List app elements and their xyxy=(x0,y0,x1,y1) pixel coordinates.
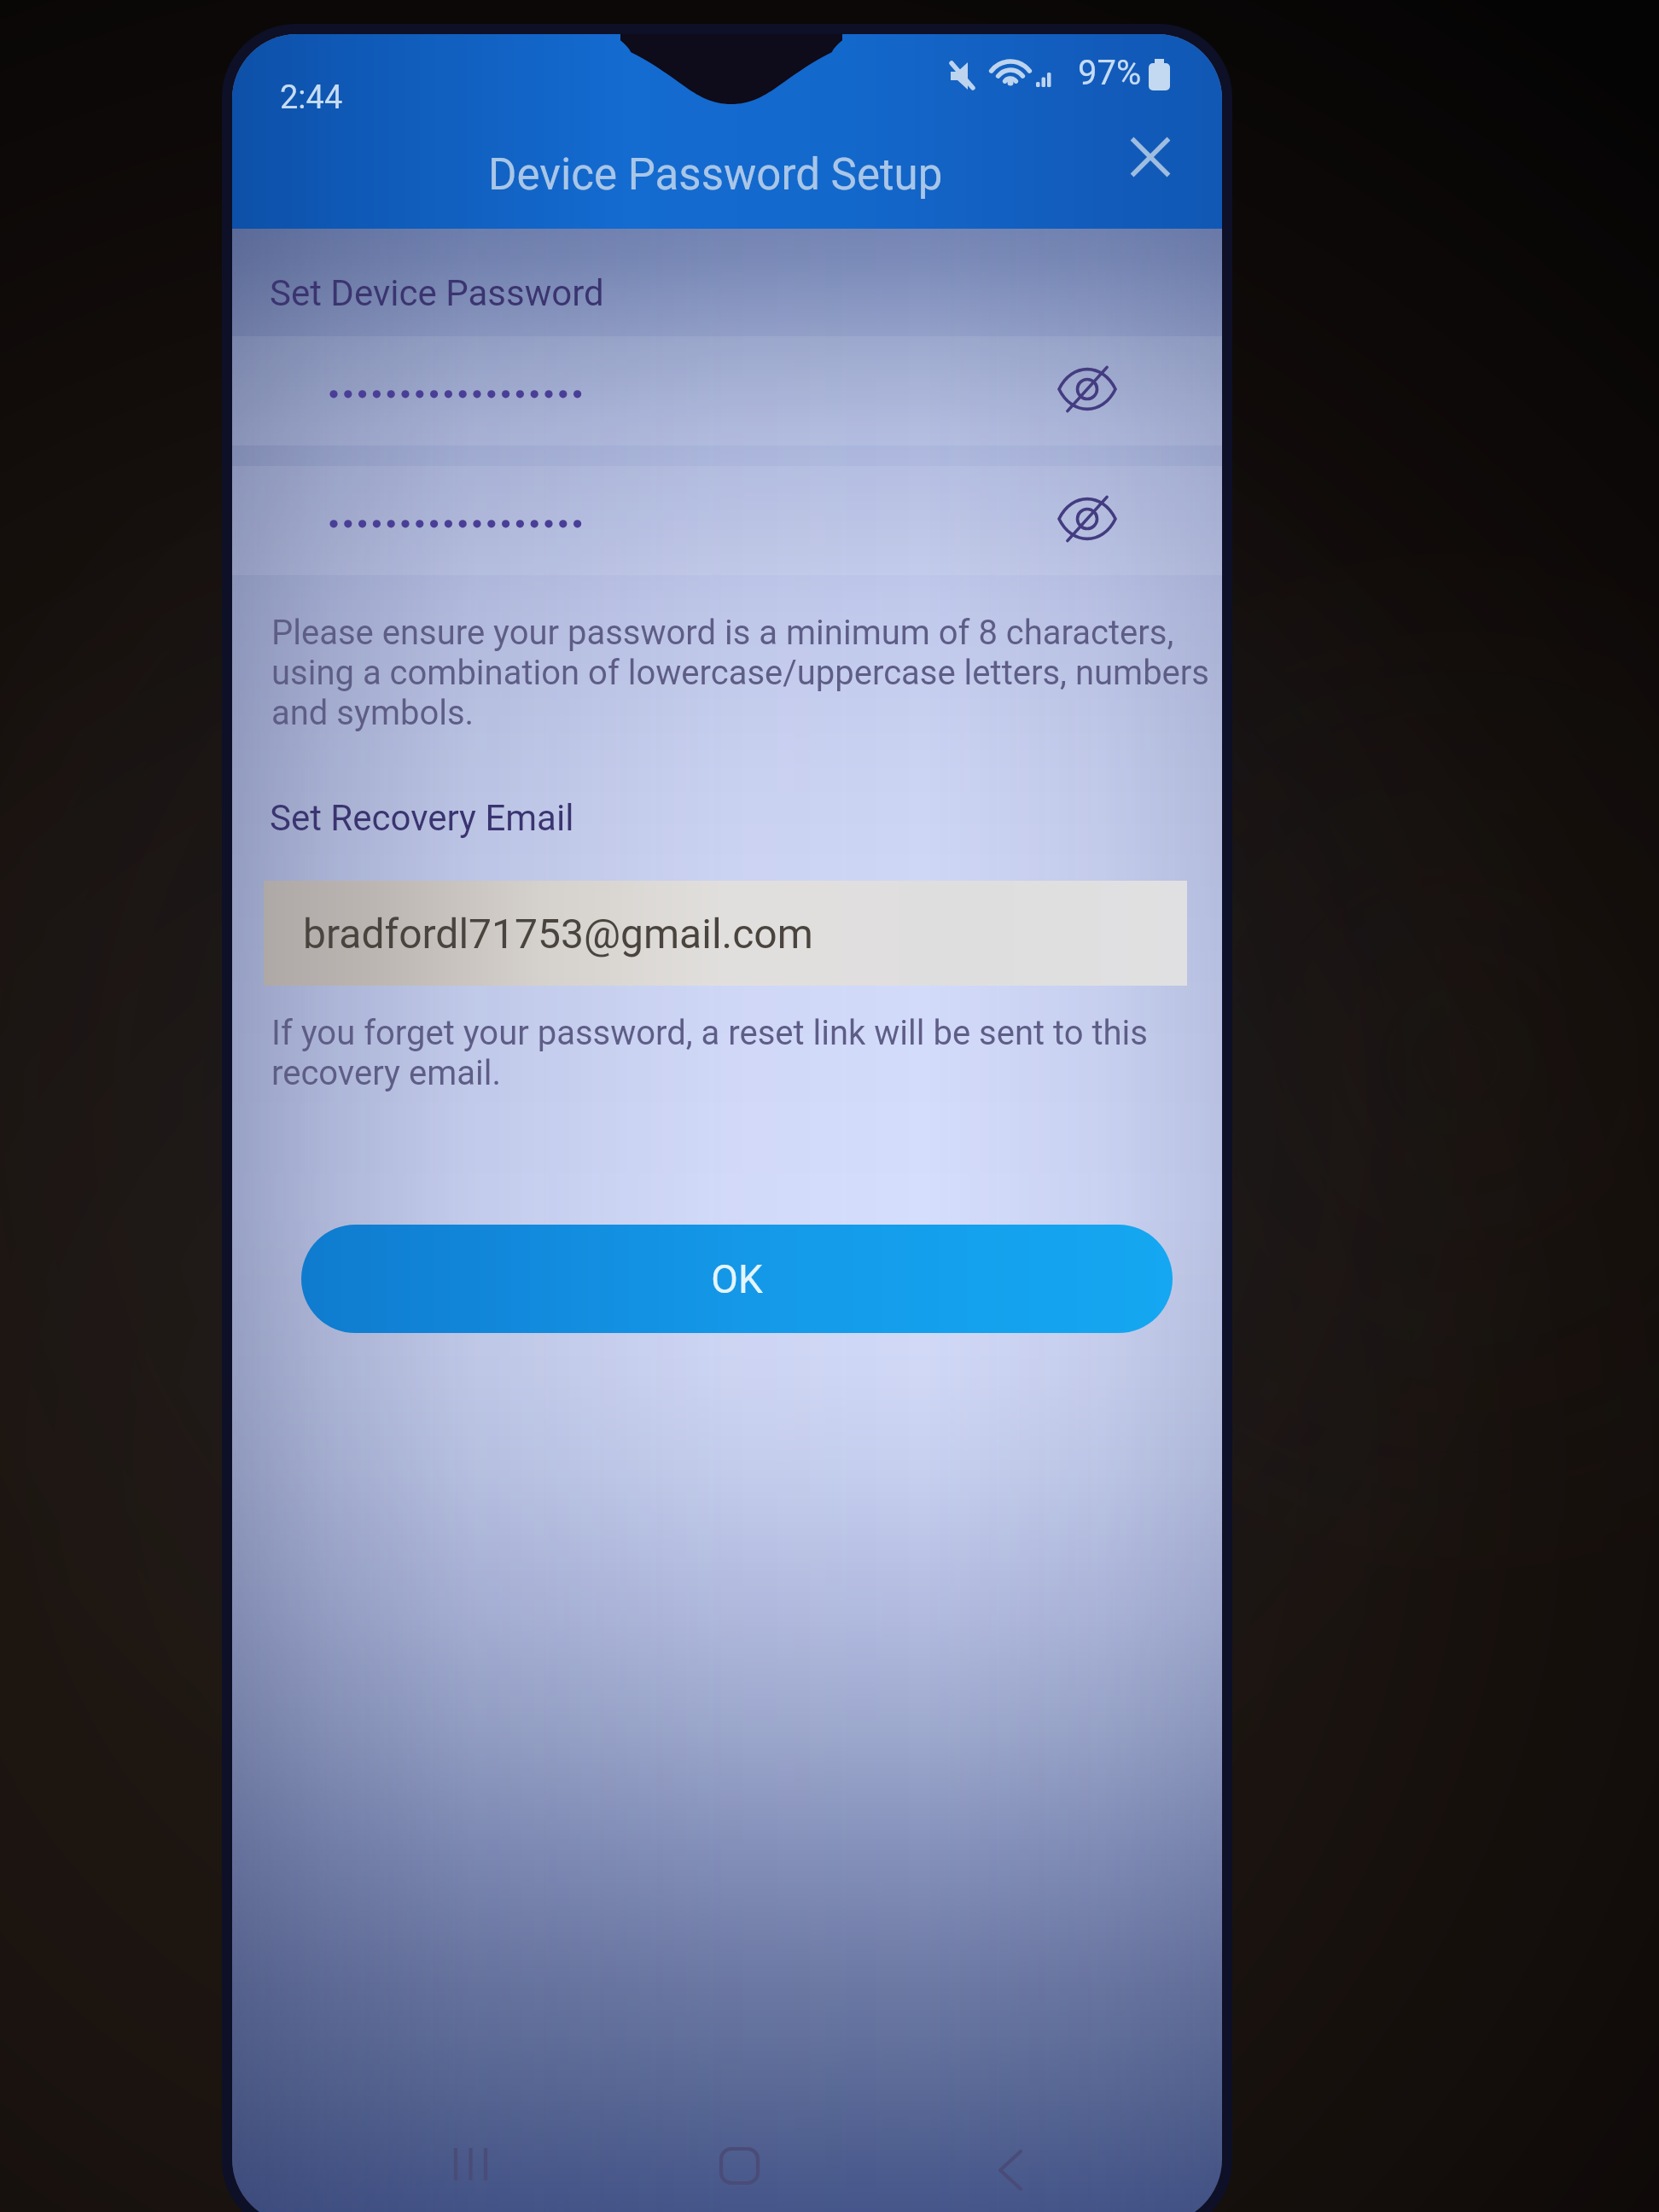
button[interactable]: Show password xyxy=(232,336,1222,445)
button[interactable]: Show password xyxy=(1046,478,1128,560)
button[interactable]: Close xyxy=(1108,114,1193,200)
staticText: Set Recovery Email xyxy=(270,797,574,839)
staticText: 97% xyxy=(1078,53,1142,93)
button[interactable]: bradfordl71753@gmail.com xyxy=(264,881,1187,986)
button[interactable]: Show password xyxy=(232,466,1222,575)
staticText: bradfordl71753@gmail.com xyxy=(303,910,813,958)
staticText: If you forget your password, a reset lin… xyxy=(271,1013,1219,1093)
staticText: Please ensure your password is a minimum… xyxy=(271,613,1219,733)
button[interactable]: Recents xyxy=(422,2120,520,2200)
button[interactable]: Show password xyxy=(1046,348,1128,430)
button[interactable]: Home xyxy=(672,2120,771,2200)
staticText: 2:44 xyxy=(280,79,343,117)
button[interactable]: Back xyxy=(951,2120,1049,2200)
staticText: OK xyxy=(711,1256,763,1302)
staticText: Device Password Setup xyxy=(488,149,943,201)
staticText: Set Device Password xyxy=(270,272,604,314)
button[interactable]: OK xyxy=(301,1225,1173,1333)
